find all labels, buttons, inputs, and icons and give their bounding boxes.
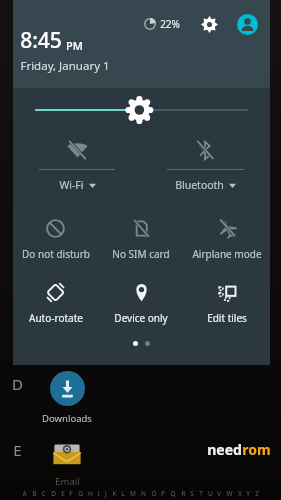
button[interactable]: Bluetooth [141, 131, 270, 201]
staticText: PM [66, 38, 83, 53]
staticText: G [78, 489, 83, 498]
staticText: 22% [160, 17, 180, 31]
staticText: R [181, 489, 186, 498]
button[interactable]: Brightness [13, 88, 270, 131]
staticText: D [51, 489, 56, 498]
button[interactable]: Auto-rotate [13, 279, 98, 331]
staticText: O [151, 489, 157, 498]
staticText: Email [55, 475, 80, 486]
staticText: H [88, 489, 93, 498]
staticText: W [226, 489, 233, 498]
staticText: K [112, 489, 117, 498]
button[interactable]: Email [34, 434, 100, 486]
staticText: Device only [114, 311, 168, 325]
staticText: D [12, 374, 23, 394]
staticText: V [217, 489, 221, 498]
staticText: F [69, 489, 73, 498]
staticText: T [199, 489, 203, 498]
staticText: B [32, 489, 37, 498]
staticText: N [141, 489, 146, 498]
staticText: need [207, 440, 242, 459]
staticText: Friday, January 1 [20, 58, 110, 74]
staticText: E [61, 489, 65, 498]
staticText: Y [246, 489, 250, 498]
button[interactable]: No SIM card [98, 215, 184, 267]
button[interactable]: Battery 22 percent [142, 15, 182, 33]
staticText: M [130, 489, 136, 498]
staticText: Bluetooth [175, 178, 224, 192]
staticText: Auto-rotate [29, 311, 83, 325]
staticText: A [22, 489, 27, 498]
staticText: U [208, 489, 213, 498]
staticText: L [121, 489, 125, 498]
button[interactable]: Do not disturb [13, 215, 98, 267]
button[interactable]: Edit tiles [184, 279, 270, 331]
staticText: Do not disturb [22, 247, 90, 261]
staticText: Airplane mode [192, 247, 262, 261]
button[interactable]: User profile [234, 11, 260, 37]
staticText: I [97, 489, 100, 498]
staticText: C [41, 489, 46, 498]
staticText: E [13, 440, 22, 460]
staticText: Q [170, 489, 176, 498]
staticText: Z [255, 489, 259, 498]
staticText: P [161, 489, 165, 498]
staticText: Edit tiles [207, 311, 247, 325]
staticText: Downloads [42, 412, 92, 425]
staticText: J [105, 489, 107, 498]
button[interactable]: Airplane mode [184, 215, 270, 267]
button[interactable]: Settings [196, 11, 222, 37]
staticText: No SIM card [112, 247, 170, 261]
staticText: X [238, 489, 242, 498]
button[interactable]: Wi-Fi [13, 131, 141, 201]
staticText: rom [242, 440, 271, 459]
staticText: S [190, 489, 194, 498]
staticText: 8:45 [20, 26, 62, 55]
button[interactable]: Downloads [34, 368, 100, 425]
button[interactable]: Device only [98, 279, 184, 331]
staticText: Wi-Fi [59, 178, 84, 192]
